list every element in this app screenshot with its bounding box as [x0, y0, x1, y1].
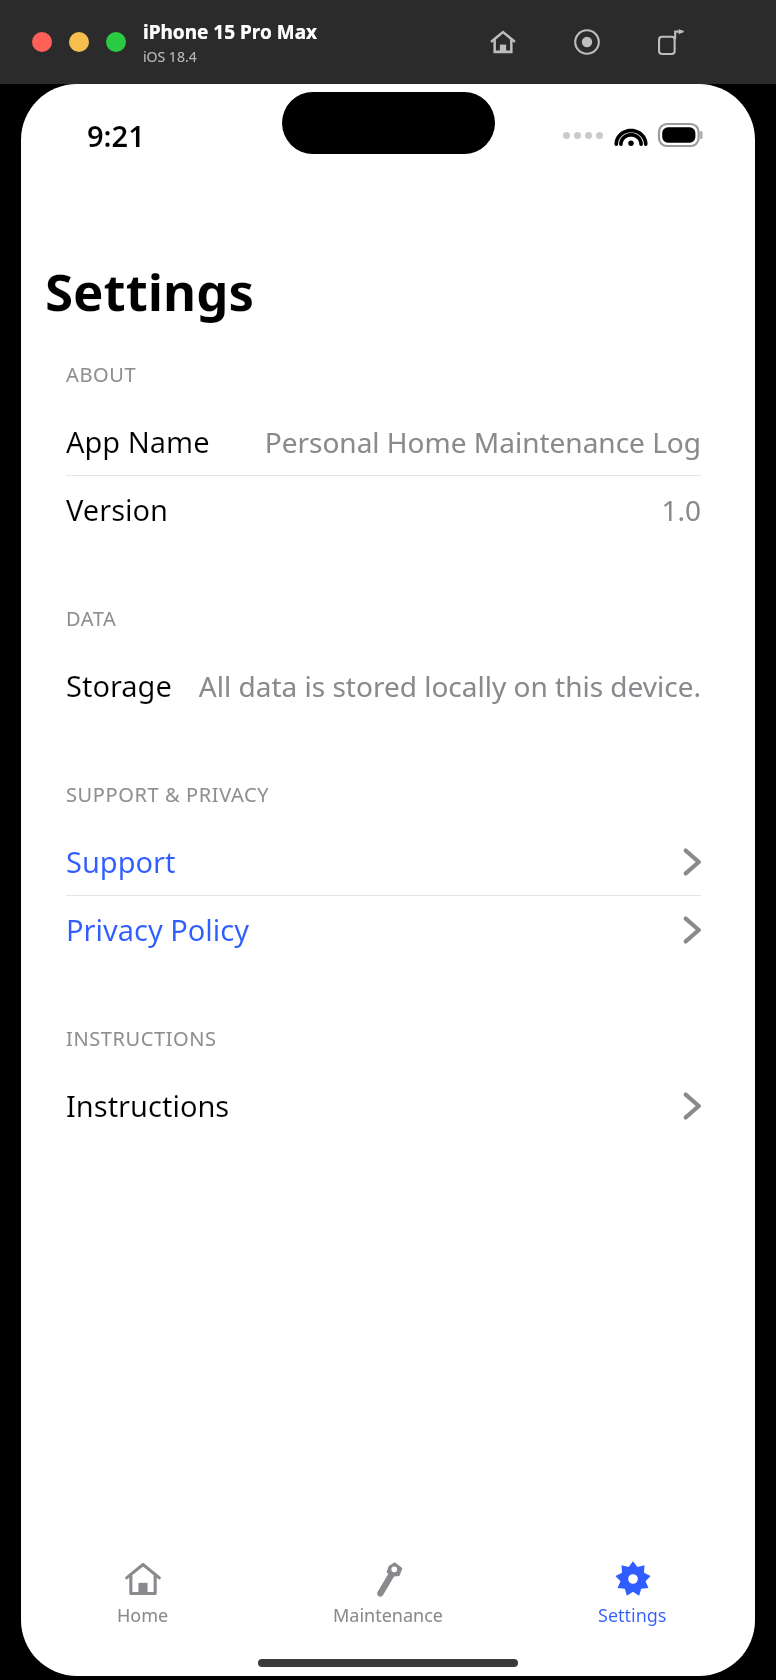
- button[interactable]: Record: [570, 25, 604, 59]
- staticText: SUPPORT & PRIVACY: [66, 781, 270, 808]
- staticText: ABOUT: [66, 361, 137, 388]
- staticText: Privacy Policy: [66, 910, 250, 949]
- staticText: iPhone 15 Pro Max: [143, 19, 318, 45]
- staticText: DATA: [66, 605, 117, 632]
- button[interactable]: Storage: [21, 652, 755, 719]
- staticText: Settings: [45, 256, 255, 325]
- staticText: Storage: [66, 666, 172, 705]
- staticText: Personal Home Maintenance Log: [264, 423, 701, 461]
- button[interactable]: Instructions: [21, 1072, 755, 1139]
- staticText: Support: [66, 842, 176, 881]
- staticText: Instructions: [66, 1086, 230, 1125]
- staticText: Maintenance: [333, 1603, 443, 1628]
- button[interactable]: Home: [21, 1546, 265, 1642]
- button[interactable]: [32, 32, 52, 52]
- staticText: INSTRUCTIONS: [66, 1025, 217, 1052]
- staticText: Home: [117, 1603, 169, 1628]
- staticText: Version: [66, 490, 168, 529]
- button[interactable]: Privacy Policy: [21, 896, 755, 963]
- button[interactable]: Support: [21, 828, 755, 895]
- button[interactable]: Settings: [510, 1546, 755, 1642]
- staticText: 1.0: [661, 491, 701, 529]
- button[interactable]: Rotate: [654, 25, 688, 59]
- button[interactable]: App Name: [21, 408, 755, 475]
- staticText: All data is stored locally on this devic…: [198, 667, 701, 705]
- button[interactable]: Version: [21, 476, 755, 543]
- button[interactable]: Home: [486, 25, 520, 59]
- staticText: iOS 18.4: [143, 47, 197, 66]
- button[interactable]: [69, 32, 89, 52]
- button[interactable]: Maintenance: [265, 1546, 510, 1642]
- staticText: 9:21: [87, 116, 145, 155]
- staticText: App Name: [66, 422, 210, 461]
- button[interactable]: [106, 32, 126, 52]
- staticText: Settings: [598, 1603, 667, 1628]
